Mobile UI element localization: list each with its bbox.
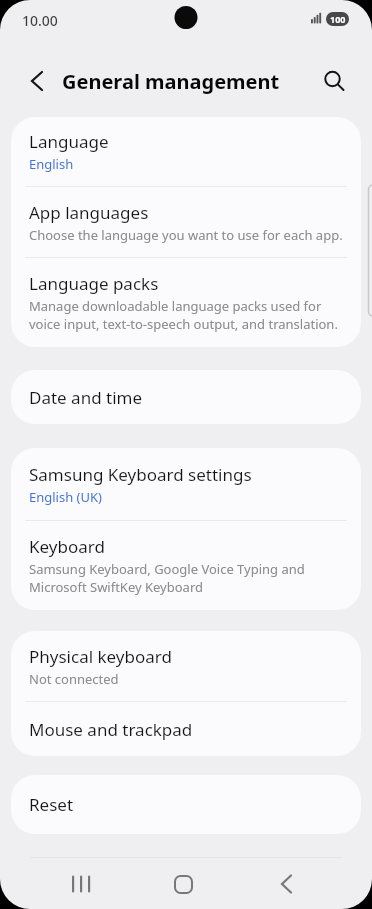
button[interactable]: Reset (11, 775, 361, 834)
staticText: Mouse and trackpad (29, 718, 193, 741)
button[interactable] (317, 63, 351, 97)
staticText: Reset (29, 793, 74, 816)
button[interactable]: Language (11, 117, 361, 186)
staticText: Keyboard (29, 535, 105, 558)
staticText: Samsung Keyboard, Google Voice Typing an… (29, 560, 305, 596)
staticText: 10.00 (22, 11, 58, 30)
button[interactable]: App languages (11, 187, 361, 257)
button[interactable]: Samsung Keyboard settings (11, 448, 361, 520)
staticText: Language packs (29, 272, 159, 295)
staticText: Physical keyboard (29, 645, 172, 668)
staticText: English (29, 155, 74, 173)
button[interactable]: Keyboard (11, 521, 361, 610)
staticText: App languages (29, 201, 149, 224)
staticText: Manage downloadable language packs used … (29, 297, 338, 333)
staticText: Choose the language you want to use for … (29, 226, 343, 244)
button[interactable] (258, 862, 318, 906)
staticText: Not connected (29, 670, 119, 688)
staticText: Language (29, 130, 109, 153)
button[interactable]: Date and time (11, 370, 361, 424)
button[interactable]: Language packs (11, 258, 361, 347)
staticText: English (UK) (29, 488, 102, 506)
staticText: 100 (330, 13, 346, 25)
button[interactable]: Physical keyboard (11, 631, 361, 701)
button[interactable] (156, 862, 216, 906)
staticText: General management (62, 68, 280, 95)
staticText: Samsung Keyboard settings (29, 463, 252, 486)
button[interactable] (20, 65, 54, 97)
button[interactable] (52, 862, 112, 906)
staticText: Date and time (29, 386, 143, 409)
button[interactable]: Mouse and trackpad (11, 702, 361, 756)
